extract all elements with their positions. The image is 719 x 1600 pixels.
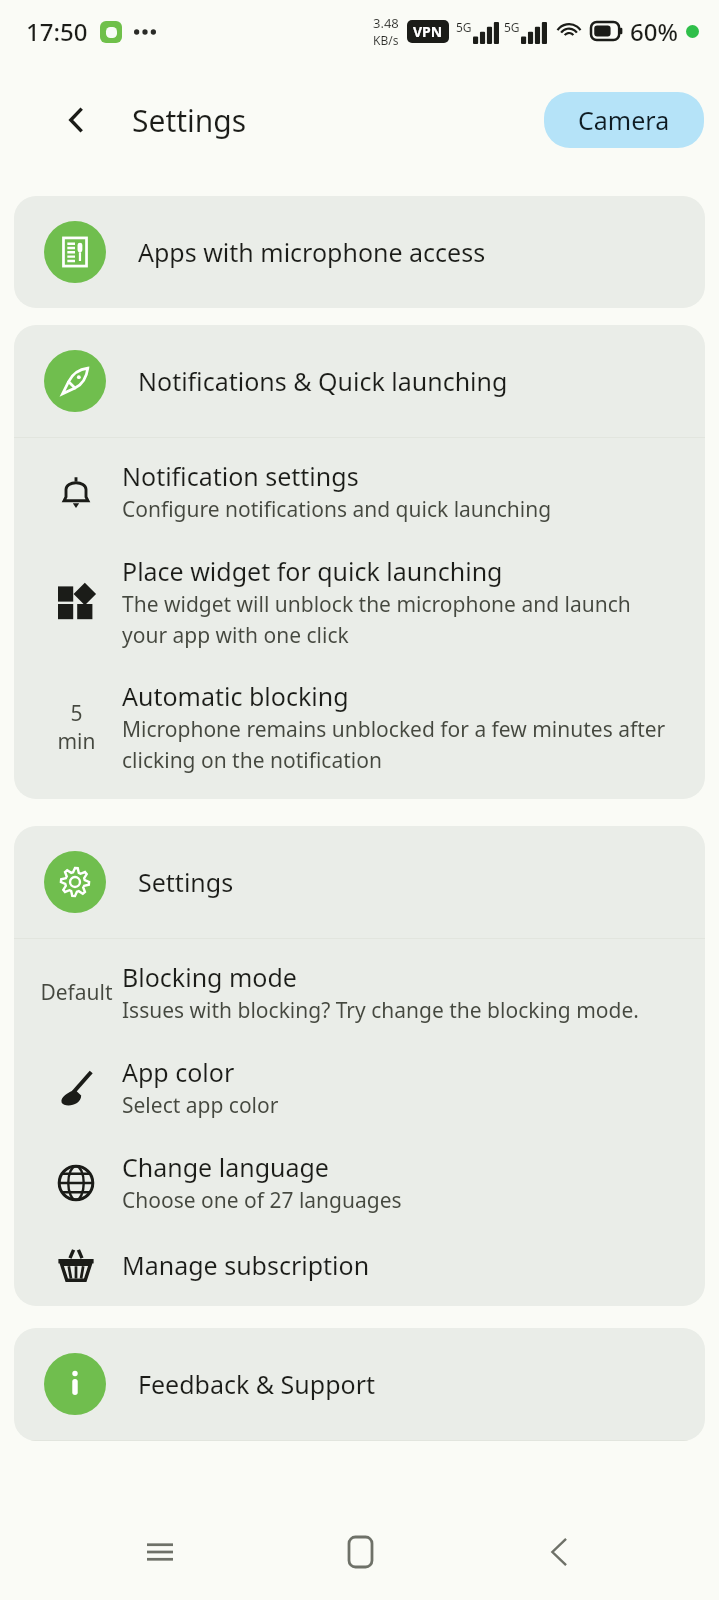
staticText: Issues with blocking? Try change the blo… — [122, 996, 639, 1025]
staticText: Change language — [122, 1150, 329, 1184]
staticText: Blocking mode — [122, 960, 297, 994]
staticText: Settings — [138, 865, 234, 899]
button[interactable]: Change language — [14, 1135, 705, 1230]
staticText: 5G — [504, 19, 520, 35]
button[interactable]: App color — [14, 1040, 705, 1135]
button[interactable]: Recent apps — [120, 1512, 200, 1592]
button[interactable]: Back — [52, 95, 102, 145]
button[interactable]: Settings — [14, 826, 705, 938]
staticText: KB/s — [373, 32, 399, 48]
staticText: Default — [40, 978, 113, 1007]
staticText: 5 min — [57, 699, 96, 755]
staticText: Automatic blocking — [122, 679, 349, 713]
button[interactable]: Place widget for quick launching — [14, 539, 705, 664]
button[interactable]: Notifications & Quick launching — [14, 325, 705, 437]
staticText: Place widget for quick launching — [122, 554, 503, 588]
button[interactable]: Manage subscription — [14, 1230, 705, 1300]
staticText: VPN — [413, 22, 443, 41]
staticText: Choose one of 27 languages — [122, 1186, 402, 1215]
staticText: Manage subscription — [122, 1248, 370, 1282]
staticText: Configure notifications and quick launch… — [122, 495, 552, 524]
button[interactable]: Feedback & Support — [14, 1328, 705, 1440]
staticText: Microphone remains unblocked for a few m… — [122, 715, 679, 774]
staticText: 5G — [456, 19, 472, 35]
staticText: Notification settings — [122, 459, 359, 493]
staticText: App color — [122, 1055, 235, 1089]
staticText: Apps with microphone access — [138, 235, 486, 269]
button[interactable]: Home — [320, 1512, 400, 1592]
staticText: Select app color — [122, 1091, 279, 1120]
button[interactable]: Back — [519, 1512, 599, 1592]
button[interactable]: Apps with microphone access — [14, 196, 705, 308]
staticText: 60% — [630, 15, 678, 48]
button[interactable]: Camera — [544, 92, 704, 148]
staticText: The widget will unblock the microphone a… — [122, 590, 679, 649]
staticText: 3.48 — [373, 14, 399, 32]
staticText: Notifications & Quick launching — [138, 364, 508, 398]
staticText: Feedback & Support — [138, 1367, 376, 1401]
staticText: 17:50 — [26, 15, 88, 48]
button[interactable]: Default — [14, 945, 705, 1040]
button[interactable]: 5 min — [14, 664, 705, 789]
staticText: Camera — [578, 103, 670, 137]
button[interactable]: Notification settings — [14, 444, 705, 539]
staticText: Settings — [132, 100, 247, 141]
